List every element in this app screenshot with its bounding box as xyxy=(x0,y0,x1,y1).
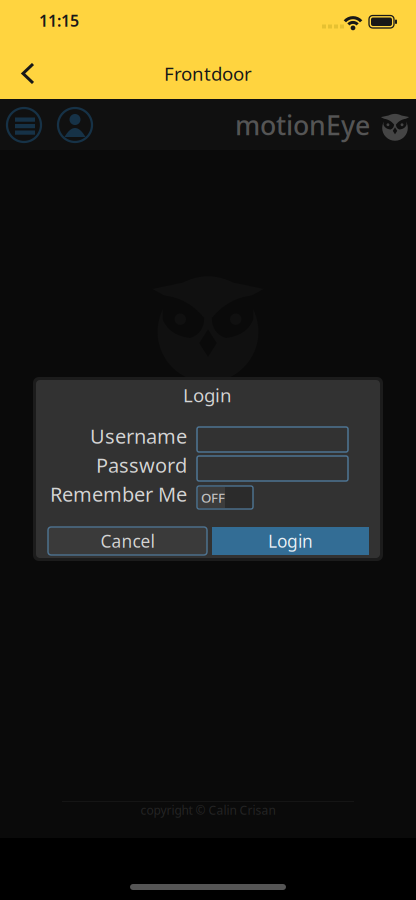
button[interactable]: Cancel xyxy=(0,0,416,900)
button[interactable]: Remember Me xyxy=(0,0,416,900)
button[interactable]: Menu xyxy=(0,0,416,900)
button[interactable]: Login xyxy=(0,0,416,900)
staticText: Remember Me xyxy=(50,481,187,507)
button[interactable]: Back xyxy=(0,0,416,900)
staticText: copyright © Calin Crisan xyxy=(140,802,275,818)
staticText: Login xyxy=(268,529,313,552)
staticText: motionEye xyxy=(235,107,370,143)
staticText: Cancel xyxy=(100,529,154,552)
staticText: Login xyxy=(183,383,232,407)
staticText: Password xyxy=(96,452,187,478)
staticText: OFF xyxy=(201,489,225,506)
button[interactable]: Account xyxy=(0,0,416,900)
staticText: Frontdoor xyxy=(164,61,252,86)
staticText: 11:15 xyxy=(39,10,79,31)
staticText: Username xyxy=(90,423,187,449)
